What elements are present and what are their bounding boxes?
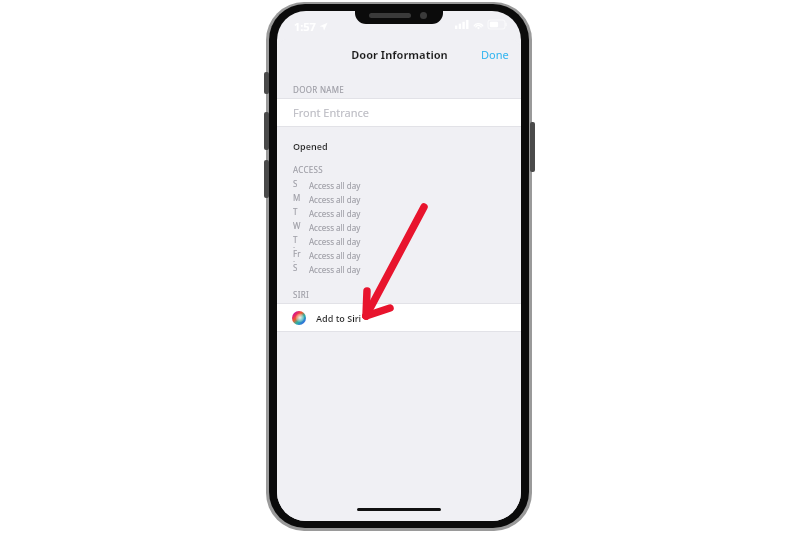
button[interactable]: Thu — [277, 234, 521, 248]
staticText: Thu — [293, 234, 301, 248]
staticText: Sat — [293, 262, 301, 276]
staticText: Access all day — [309, 222, 361, 233]
staticText: Fri — [293, 248, 301, 262]
button[interactable]: Tue — [277, 206, 521, 220]
button[interactable]: Fri — [277, 248, 521, 262]
staticText: ACCESS — [293, 164, 323, 175]
staticText: Opened — [293, 140, 328, 152]
staticText: Access all day — [309, 208, 361, 219]
staticText: Add to Siri — [316, 312, 362, 324]
staticText: Sun — [293, 178, 301, 192]
staticText: Mon — [293, 192, 301, 206]
button[interactable]: Done — [469, 41, 521, 68]
staticText: Access all day — [309, 264, 361, 275]
staticText: DOOR NAME — [293, 84, 344, 95]
staticText: Front Entrance — [293, 105, 369, 120]
staticText: 1:57 — [294, 19, 316, 34]
staticText: Access all day — [309, 250, 361, 261]
other: Add to Siri — [292, 311, 306, 325]
button[interactable]: Sat — [277, 262, 521, 276]
staticText: Tue — [293, 206, 301, 220]
staticText: Wed — [293, 220, 301, 234]
button[interactable]: Mon — [277, 192, 521, 206]
button[interactable]: Wed — [277, 220, 521, 234]
staticText: Done — [481, 47, 509, 62]
staticText: Access all day — [309, 180, 361, 191]
staticText: Door Information — [351, 47, 448, 62]
button[interactable]: Sun — [277, 178, 521, 192]
staticText: Access all day — [309, 194, 361, 205]
staticText: Access all day — [309, 236, 361, 247]
staticText: SIRI — [293, 289, 309, 300]
button[interactable]: Add to Siri — [277, 304, 521, 331]
button[interactable]: Front Entrance — [277, 99, 521, 126]
